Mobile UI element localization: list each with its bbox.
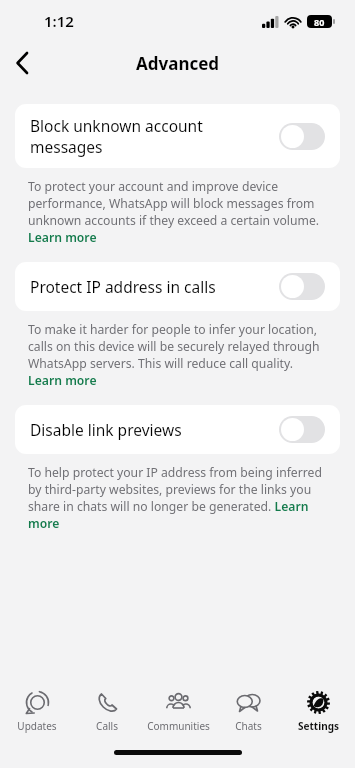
staticText: 1:12: [44, 11, 74, 31]
staticText: Updates: [17, 719, 57, 733]
staticText: 80: [314, 16, 325, 28]
button[interactable]: Communities: [145, 688, 211, 735]
staticText: Advanced: [136, 52, 220, 75]
button[interactable]: Protect IP address in calls: [15, 262, 340, 311]
staticText: Settings: [298, 719, 339, 733]
button[interactable]: Block unknown account messages: [15, 104, 340, 168]
button[interactable]: Updates: [4, 688, 70, 735]
staticText: Calls: [96, 719, 118, 733]
staticText: Protect IP address in calls: [30, 276, 271, 297]
staticText: Block unknown account messages: [30, 115, 271, 157]
button[interactable]: Settings: [285, 688, 351, 735]
button[interactable]: Toggle off: [279, 416, 325, 443]
staticText: To help protect your IP address from bei…: [28, 464, 327, 532]
staticText: Disable link previews: [30, 419, 271, 440]
button[interactable]: Toggle off: [279, 273, 325, 300]
staticText: To protect your account and improve devi…: [28, 178, 327, 246]
staticText: Chats: [235, 719, 262, 733]
button[interactable]: Chats: [215, 688, 281, 735]
staticText: Communities: [147, 719, 210, 733]
staticText: To make it harder for people to infer yo…: [28, 321, 327, 389]
button[interactable]: Disable link previews: [15, 405, 340, 454]
button[interactable]: Back: [0, 41, 44, 85]
button[interactable]: Toggle off: [279, 123, 325, 150]
button[interactable]: Calls: [74, 688, 140, 735]
